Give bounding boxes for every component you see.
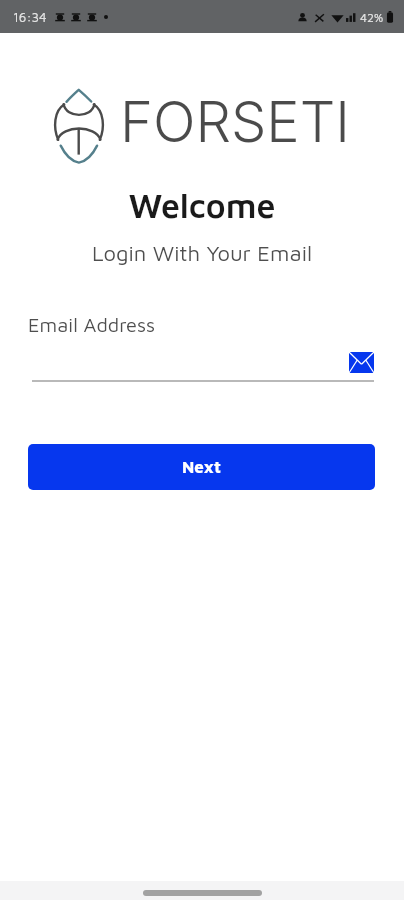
button[interactable]: Next <box>28 444 375 490</box>
staticText: Email Address <box>28 313 156 336</box>
staticText: 42% <box>360 10 384 24</box>
staticText: Next <box>182 457 221 477</box>
staticText: FORSETI <box>120 88 350 156</box>
staticText: 16:34 <box>13 9 47 24</box>
staticText: Welcome <box>0 185 404 225</box>
staticText: Login With Your Email <box>0 240 404 266</box>
button[interactable]: Email Address input <box>32 346 374 382</box>
